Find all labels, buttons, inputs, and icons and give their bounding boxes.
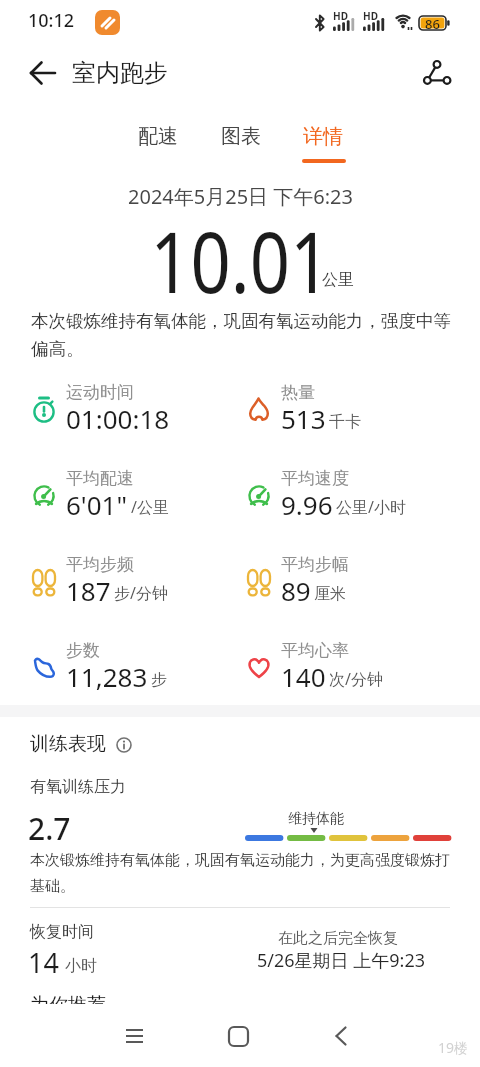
button[interactable]: 平均步频	[30, 554, 240, 624]
button[interactable]: 平均速度	[245, 468, 455, 538]
staticText: 01:00:18	[66, 401, 170, 436]
button[interactable]: 步数	[30, 640, 240, 710]
staticText: 训练表现	[30, 732, 106, 756]
staticText: 19楼	[438, 1038, 469, 1057]
button[interactable]: 平均心率	[245, 640, 455, 710]
staticText: 次/分钟	[329, 668, 383, 690]
button[interactable]	[416, 52, 460, 88]
staticText: HD	[363, 9, 378, 23]
staticText: 配速	[138, 124, 178, 149]
staticText: 运动时间	[66, 382, 134, 403]
button[interactable]: 热量	[245, 382, 455, 452]
button[interactable]: 平均步幅	[245, 554, 455, 624]
staticText: 平均步幅	[281, 554, 349, 575]
staticText: 本次锻炼维持有氧体能，巩固有氧运动能力，为更高强度锻炼打 基础。	[30, 851, 450, 896]
staticText: 有氧训练压力	[30, 777, 126, 797]
button[interactable]	[318, 1018, 366, 1056]
staticText: 详情	[303, 124, 343, 149]
staticText: 10:12	[28, 8, 75, 33]
staticText: 步/分钟	[114, 582, 168, 604]
staticText: 平均速度	[281, 468, 349, 489]
button[interactable]	[20, 58, 66, 88]
staticText: 5/26星期日 上午9:23	[257, 948, 425, 973]
button[interactable]: 运动时间	[30, 382, 240, 452]
staticText: 14	[28, 944, 59, 981]
button[interactable]	[110, 1018, 158, 1056]
staticText: 为你推荐	[30, 993, 106, 1004]
staticText: 步数	[66, 640, 100, 661]
staticText: 10.01	[150, 204, 331, 317]
button[interactable]	[114, 735, 134, 755]
staticText: 恢复时间	[30, 922, 94, 942]
staticText: 厘米	[314, 584, 346, 604]
staticText: 187	[66, 573, 111, 608]
staticText: 图表	[221, 124, 261, 149]
staticText: 140	[281, 659, 326, 694]
staticText: 公里/小时	[336, 496, 406, 518]
staticText: 小时	[65, 956, 97, 976]
staticText: 维持体能	[288, 810, 344, 828]
staticText: 步	[151, 670, 167, 690]
staticText: 89	[281, 573, 311, 608]
staticText: 9.96	[281, 487, 333, 522]
staticText: 平均配速	[66, 468, 134, 489]
button[interactable]: 平均配速	[30, 468, 240, 538]
staticText: 平均步频	[66, 554, 134, 575]
button[interactable]: 配速	[128, 118, 190, 158]
staticText: 86	[425, 15, 440, 33]
staticText: 2.7	[28, 808, 71, 849]
staticText: HD	[333, 9, 348, 23]
staticText: 千卡	[329, 412, 361, 432]
staticText: 在此之后完全恢复	[278, 929, 398, 948]
staticText: 平均心率	[281, 640, 349, 661]
staticText: 公里	[322, 270, 354, 290]
button[interactable]: 详情	[293, 118, 355, 158]
staticText: 2024年5月25日 下午6:23	[128, 183, 353, 210]
staticText: 热量	[281, 382, 315, 403]
button[interactable]	[214, 1018, 262, 1056]
staticText: 本次锻炼维持有氧体能，巩固有氧运动能力，强度中等 偏高。	[31, 310, 451, 360]
staticText: 6'01"	[66, 487, 128, 522]
staticText: 11,283	[66, 659, 148, 694]
staticText: 室内跑步	[72, 58, 168, 88]
button[interactable]: 图表	[211, 118, 273, 158]
staticText: /公里	[131, 496, 169, 518]
staticText: 513	[281, 401, 326, 436]
